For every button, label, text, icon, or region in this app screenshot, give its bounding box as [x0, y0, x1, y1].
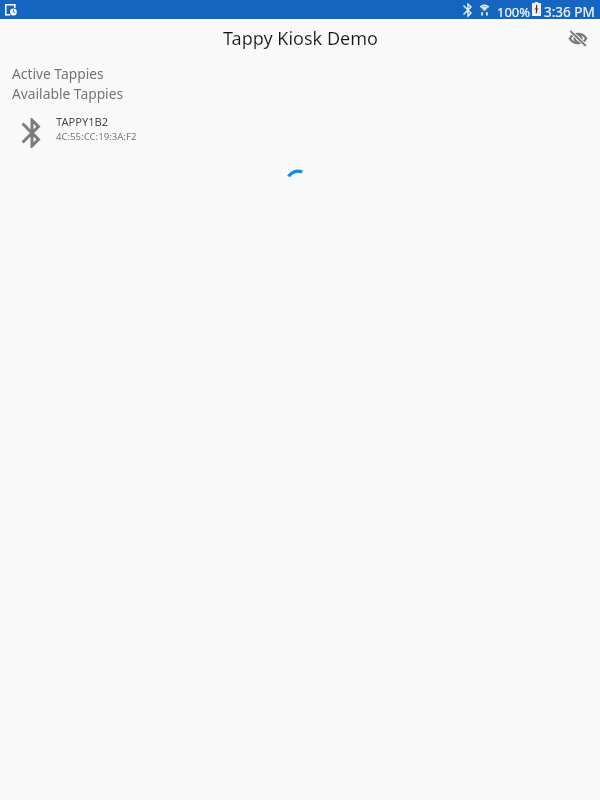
staticText: 3:36 PM [544, 3, 595, 21]
staticText: 4C:55:CC:19:3A:F2 [56, 130, 137, 143]
button[interactable]: TAPPY1B2 [0, 110, 600, 156]
staticText: Available Tappies [12, 84, 124, 103]
button[interactable]: Hide devices [560, 20, 596, 56]
staticText: 100% [497, 3, 531, 21]
staticText: Tappy Kiosk Demo [223, 26, 378, 51]
staticText: Active Tappies [12, 64, 104, 83]
staticText: TAPPY1B2 [56, 114, 109, 129]
